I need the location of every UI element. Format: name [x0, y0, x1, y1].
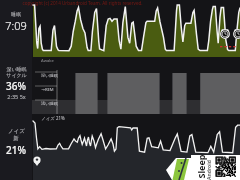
staticText: Awake	[41, 58, 54, 64]
staticText: Sleep	[195, 154, 207, 179]
staticText: 36%	[6, 79, 26, 93]
staticText: 睡眠	[11, 11, 21, 17]
button[interactable]: 睡眠	[0, 0, 32, 180]
staticText: 2:35 5x	[7, 93, 26, 100]
staticText: 深い睡眠	[41, 73, 58, 78]
staticText: Android	[206, 160, 213, 180]
staticText: ノイズ	[8, 128, 25, 135]
staticText: 7:09	[5, 18, 27, 33]
staticText: 浅い睡眠	[41, 101, 58, 106]
staticText: →REM	[41, 87, 54, 93]
staticText: 21%	[6, 143, 26, 157]
staticText: ノイズ 21%	[41, 115, 65, 121]
staticText: copyright (c) 2014 Urbandroid Team. All …	[22, 0, 143, 6]
staticText: 深い睡眠	[6, 66, 27, 72]
staticText: 新	[13, 135, 19, 142]
staticText: サイクル	[6, 72, 27, 78]
